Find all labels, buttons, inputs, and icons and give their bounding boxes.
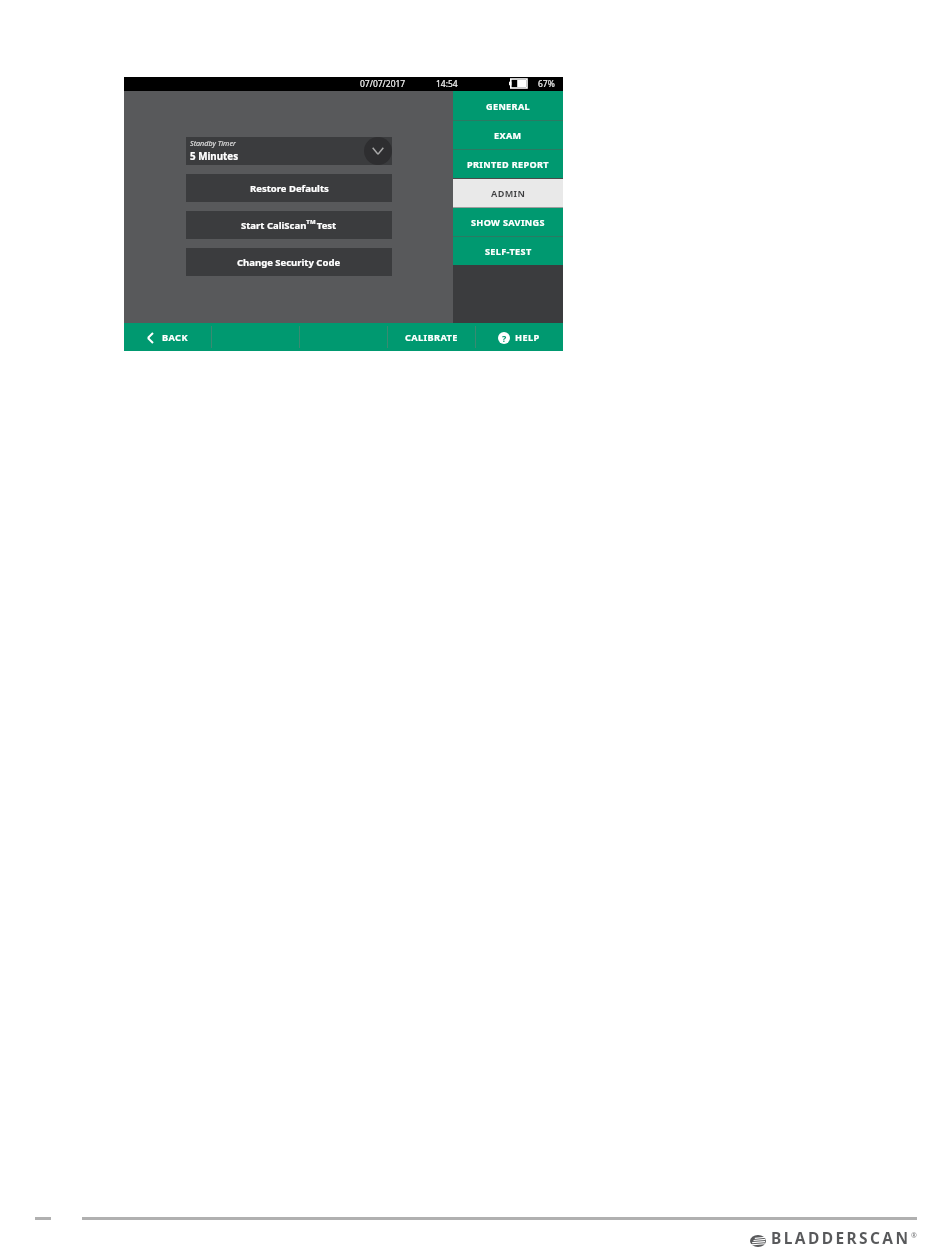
staticText: 14:54 (436, 78, 458, 90)
staticText: EXAM (494, 129, 522, 141)
button[interactable]: BACK (124, 323, 211, 351)
staticText: HELP (515, 331, 540, 344)
staticText: ADMIN (491, 187, 526, 199)
button[interactable]: Standby Timer (186, 137, 392, 165)
staticText: 67% (538, 78, 555, 90)
button[interactable]: EXAM (453, 120, 563, 149)
staticText: ? (502, 332, 507, 344)
button[interactable]: CALIBRATE (387, 323, 475, 351)
button[interactable]: Restore Defaults (186, 174, 392, 202)
staticText: 07/07/2017 (360, 78, 406, 90)
staticText: ® (911, 1231, 917, 1241)
staticText: BLADDERSCAN (771, 1227, 911, 1248)
staticText: SHOW SAVINGS (471, 216, 545, 228)
staticText: Restore Defaults (250, 182, 329, 195)
button[interactable]: ADMIN (453, 178, 563, 207)
button[interactable]: PRINTED REPORT (453, 149, 563, 178)
button[interactable]: SELF-TEST (453, 236, 563, 265)
staticText: 5 Minutes (190, 150, 239, 163)
button[interactable]: Expand standby timer options (364, 137, 392, 165)
staticText: GENERAL (486, 100, 530, 112)
staticText: SELF-TEST (485, 245, 532, 257)
button[interactable]: Start CaliScanTM Test (186, 211, 392, 239)
staticText: CALIBRATE (405, 331, 458, 344)
staticText: Start CaliScanTM Test (241, 218, 337, 232)
staticText: BACK (162, 331, 188, 344)
button[interactable]: GENERAL (453, 91, 563, 120)
button[interactable]: ? (475, 323, 563, 351)
staticText: Standby Timer (190, 138, 236, 148)
staticText: PRINTED REPORT (467, 158, 549, 170)
staticText: Change Security Code (237, 256, 341, 269)
button[interactable]: SHOW SAVINGS (453, 207, 563, 236)
button[interactable]: Change Security Code (186, 248, 392, 276)
